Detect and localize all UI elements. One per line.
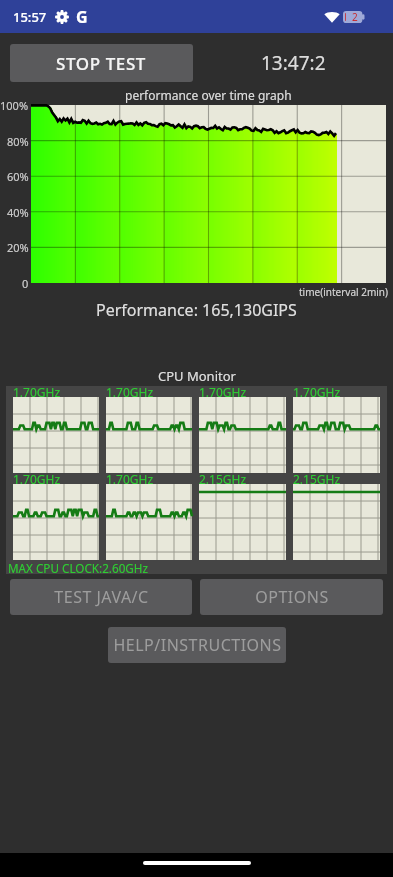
staticText: G (76, 6, 88, 28)
staticText: 1.70GHz (199, 384, 247, 400)
staticText: STOP TEST (56, 52, 147, 75)
staticText: performance over time graph (125, 87, 292, 103)
staticText: MAX CPU CLOCK:2.60GHz (8, 560, 149, 574)
other: Home (143, 861, 251, 865)
staticText: 2.15GHz (293, 471, 341, 487)
staticText: 13:47:2 (261, 50, 326, 76)
other: Settings (55, 10, 69, 24)
staticText: CPU Monitor (158, 367, 236, 385)
staticText: 2 (352, 10, 358, 24)
button[interactable]: TEST JAVA/C (10, 579, 192, 615)
button[interactable]: STOP TEST (10, 44, 193, 82)
staticText: 0 (22, 276, 29, 291)
staticText: 60% (7, 169, 29, 184)
staticText: 20% (7, 240, 29, 255)
staticText: HELP/INSTRUCTIONS (113, 634, 282, 656)
other: Battery (343, 11, 365, 23)
staticText: 80% (7, 134, 29, 149)
staticText: 1.70GHz (106, 471, 154, 487)
staticText: 40% (7, 205, 29, 220)
staticText: OPTIONS (255, 586, 329, 608)
staticText: TEST JAVA/C (54, 586, 149, 608)
staticText: 1.70GHz (13, 471, 61, 487)
staticText: Performance: 165,130GIPS (96, 299, 297, 321)
staticText: time(interval 2min) (299, 285, 389, 299)
staticText: 100% (0, 98, 29, 113)
button[interactable]: HELP/INSTRUCTIONS (108, 627, 286, 663)
staticText: 2.15GHz (199, 471, 247, 487)
other: Wi-Fi (324, 11, 340, 23)
staticText: 1.70GHz (106, 384, 154, 400)
button[interactable]: OPTIONS (200, 579, 383, 615)
staticText: 15:57 (13, 8, 47, 26)
staticText: 1.70GHz (13, 384, 61, 400)
staticText: 1.70GHz (293, 384, 341, 400)
